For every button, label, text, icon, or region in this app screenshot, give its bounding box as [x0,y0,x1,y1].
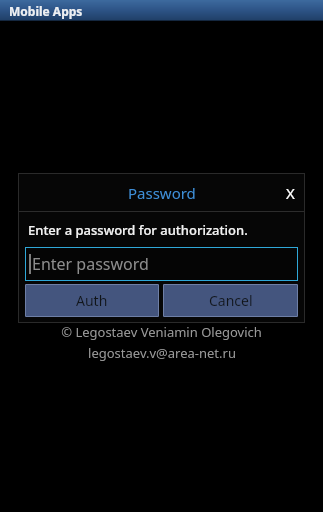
button[interactable]: Close [276,174,304,211]
staticText: X [286,183,295,203]
staticText: Mobile Apps [9,3,83,19]
staticText: © Legostaev Veniamin Olegovich [61,323,262,341]
button[interactable]: Enter password [25,247,298,281]
staticText: Password [128,183,196,203]
staticText: Enter password [32,253,149,275]
staticText: Auth [76,291,108,310]
button[interactable]: Cancel [163,284,298,317]
staticText: legostaev.v@area-net.ru [88,344,236,362]
staticText: Enter a password for authorization. [28,221,248,239]
button[interactable]: Auth [25,284,159,317]
staticText: Cancel [209,291,253,310]
